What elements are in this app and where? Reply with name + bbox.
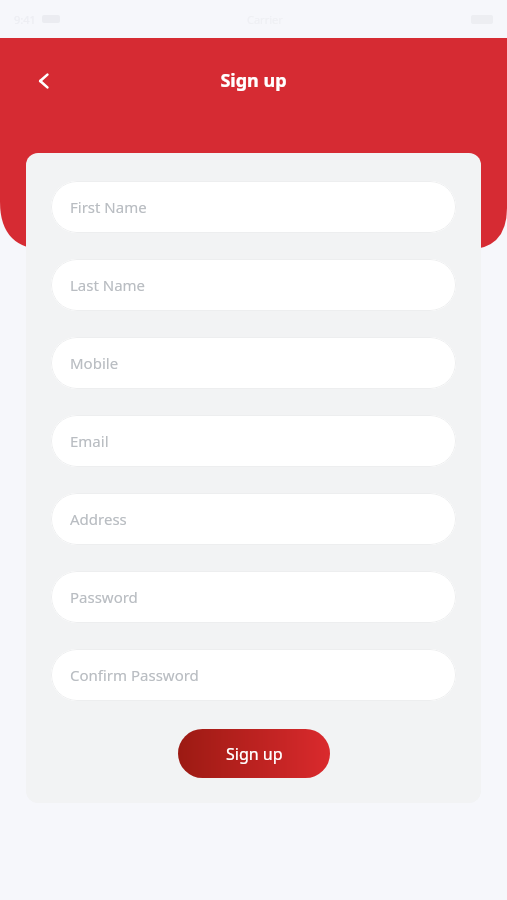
- staticText: Address: [70, 509, 127, 529]
- button[interactable]: Confirm Password: [51, 649, 456, 701]
- button[interactable]: Email: [51, 415, 456, 467]
- staticText: Sign up: [226, 743, 283, 765]
- button[interactable]: Last Name: [51, 259, 456, 311]
- staticText: Mobile: [70, 353, 119, 373]
- button[interactable]: Sign up: [178, 729, 330, 778]
- button[interactable]: Address: [51, 493, 456, 545]
- staticText: Confirm Password: [70, 665, 199, 685]
- staticText: Email: [70, 431, 109, 451]
- button[interactable]: First Name: [51, 181, 456, 233]
- staticText: Last Name: [70, 275, 146, 295]
- staticText: First Name: [70, 197, 147, 217]
- button[interactable]: Mobile: [51, 337, 456, 389]
- staticText: Sign up: [220, 68, 287, 93]
- button[interactable]: Back: [26, 62, 64, 100]
- button[interactable]: Password: [51, 571, 456, 623]
- staticText: Password: [70, 587, 138, 607]
